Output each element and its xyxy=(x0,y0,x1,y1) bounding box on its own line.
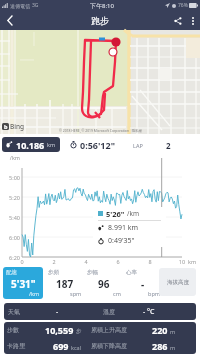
staticText: km xyxy=(47,141,56,148)
staticText: - xyxy=(56,307,59,317)
staticText: 286 xyxy=(152,340,168,352)
staticText: 96 xyxy=(98,277,110,291)
staticText: 累積上升高度 xyxy=(91,326,127,334)
staticText: 累積下降高度 xyxy=(91,342,127,350)
staticText: 心率 xyxy=(126,269,137,276)
staticText: spm xyxy=(70,290,82,297)
staticText: 海拔高度 xyxy=(167,279,189,286)
staticText: km xyxy=(188,258,197,265)
staticText: 5'31" xyxy=(11,277,36,291)
staticText: - °C xyxy=(143,307,155,317)
staticText: kcal xyxy=(71,344,82,351)
button[interactable]: Share xyxy=(169,11,186,30)
staticText: 8 xyxy=(146,258,154,265)
staticText: 跑步 xyxy=(91,15,109,26)
staticText: 220 xyxy=(152,324,168,336)
staticText: cm xyxy=(113,290,121,297)
staticText: 76% xyxy=(178,2,188,9)
staticText: 8.991 km xyxy=(108,223,138,233)
staticText: bpm xyxy=(148,290,160,297)
staticText: 步數 xyxy=(7,326,19,334)
staticText: 步 xyxy=(76,328,82,335)
button[interactable]: More options xyxy=(186,11,199,30)
staticText: 10.186 xyxy=(16,139,45,151)
staticText: 0:49'35" xyxy=(108,236,135,246)
staticText: 4 xyxy=(82,258,90,265)
staticText: 步幅 xyxy=(87,269,98,276)
staticText: 699 xyxy=(53,340,69,352)
button[interactable]: 步幅 xyxy=(84,267,124,299)
staticText: 0:56'12" xyxy=(80,139,115,151)
staticText: m xyxy=(170,328,176,335)
button[interactable]: 天氣 xyxy=(4,303,196,320)
staticText: /km xyxy=(3,154,20,161)
staticText: 10 xyxy=(178,258,186,265)
staticText: m xyxy=(170,344,176,351)
staticText: 5:20 xyxy=(3,194,20,201)
staticText: /km xyxy=(29,290,40,297)
button[interactable]: 心率 xyxy=(123,267,163,299)
staticText: 下午8:10 xyxy=(90,2,114,10)
button[interactable]: 海拔高度 xyxy=(159,268,196,296)
button[interactable]: 卡路里 xyxy=(4,338,196,354)
staticText: 0 xyxy=(18,258,26,265)
staticText: 187 xyxy=(56,277,74,291)
staticText: 6:00 xyxy=(3,234,20,241)
staticText: LAP xyxy=(133,142,143,149)
staticText: 遠傳電信 xyxy=(10,3,30,9)
staticText: 配速 xyxy=(6,269,17,276)
staticText: 5:40 xyxy=(3,214,20,221)
staticText: b xyxy=(4,123,8,130)
staticText: 5:00 xyxy=(3,174,20,181)
button[interactable]: 10.186 xyxy=(2,137,60,152)
staticText: 步頻 xyxy=(48,269,59,276)
staticText: 2 xyxy=(166,140,171,151)
button[interactable]: 步頻 xyxy=(45,267,85,299)
staticText: /km xyxy=(127,209,139,218)
staticText: - xyxy=(141,277,145,291)
button[interactable]: 配速 xyxy=(3,267,43,299)
staticText: Bing xyxy=(10,122,25,131)
staticText: 天氣 xyxy=(8,308,20,316)
staticText: 6:20 xyxy=(3,254,20,261)
staticText: 卡路里 xyxy=(7,342,25,350)
button[interactable]: 步數 xyxy=(4,322,196,338)
staticText: © 2018 HERE, © 2019 Microsoft Corporatio… xyxy=(59,128,142,133)
staticText: 3G xyxy=(32,2,39,9)
button[interactable]: Back xyxy=(0,11,19,30)
staticText: 2 xyxy=(50,258,58,265)
button[interactable]: 0:56'12" xyxy=(70,137,115,152)
staticText: 5'26" xyxy=(106,209,125,219)
staticText: 6 xyxy=(114,258,122,265)
staticText: 10,559 xyxy=(45,324,74,336)
staticText: 溫度 xyxy=(103,308,115,316)
